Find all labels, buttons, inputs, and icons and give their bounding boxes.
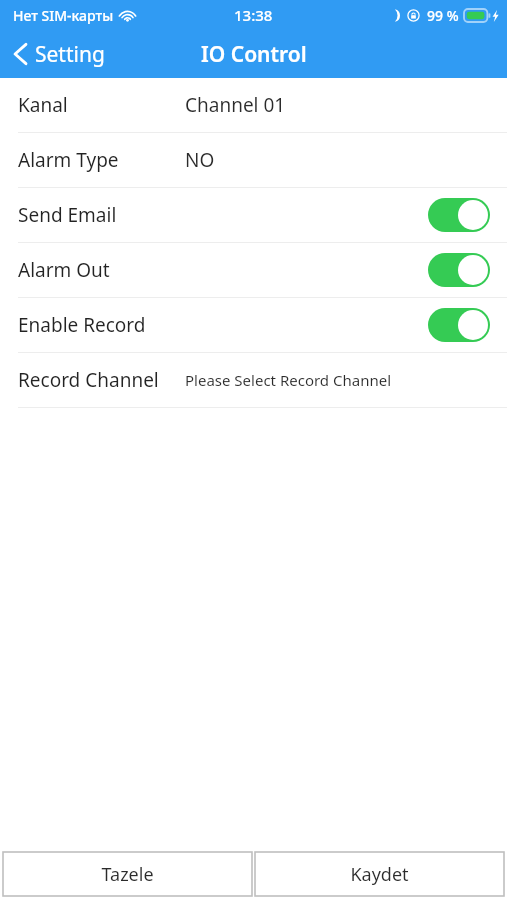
button[interactable]: Toggle <box>428 198 490 232</box>
staticText: 99 % <box>427 6 459 25</box>
button[interactable]: Kanal <box>0 78 507 132</box>
staticText: Setting <box>35 40 105 69</box>
staticText: Kanal <box>18 92 68 118</box>
staticText: Alarm Type <box>18 147 119 173</box>
button[interactable]: Tazele <box>3 852 252 896</box>
staticText: Send Email <box>18 202 117 228</box>
staticText: Kaydet <box>350 862 409 887</box>
staticText: 13:38 <box>234 5 273 25</box>
staticText: Нет SIM-карты <box>13 6 114 25</box>
staticText: Record Channel <box>18 367 159 393</box>
button[interactable]: Setting <box>0 30 119 78</box>
button[interactable]: Enable Record <box>0 298 507 352</box>
staticText: Tazele <box>101 862 154 887</box>
staticText: IO Control <box>201 40 307 69</box>
button[interactable]: Alarm Out <box>0 243 507 297</box>
staticText: Channel 01 <box>185 92 286 118</box>
button[interactable]: Record Channel <box>0 353 507 407</box>
staticText: Please Select Record Channel <box>185 370 392 390</box>
staticText: NO <box>185 147 215 173</box>
button[interactable]: Toggle <box>428 253 490 287</box>
button[interactable]: Send Email <box>0 188 507 242</box>
button[interactable]: Alarm Type <box>0 133 507 187</box>
staticText: Enable Record <box>18 312 146 338</box>
button[interactable]: Kaydet <box>255 852 504 896</box>
button[interactable]: Toggle <box>428 308 490 342</box>
staticText: Alarm Out <box>18 257 110 283</box>
